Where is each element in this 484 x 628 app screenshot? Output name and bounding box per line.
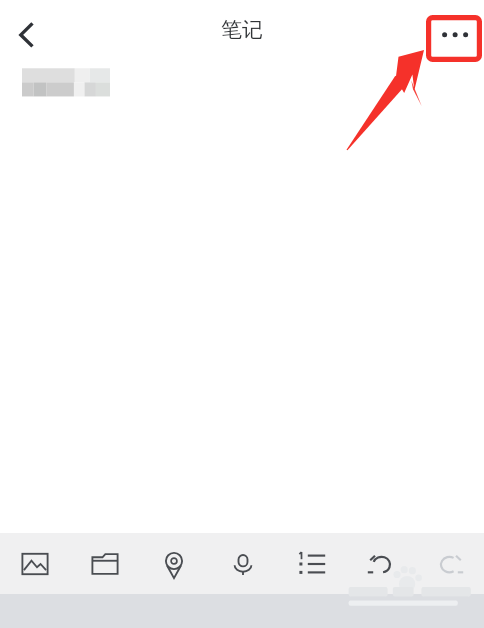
button[interactable]: More options	[426, 15, 482, 62]
button[interactable]: Undo	[346, 533, 415, 594]
button[interactable]: Folder	[70, 533, 139, 594]
button[interactable]: Redo	[415, 533, 484, 594]
staticText: 笔记	[221, 17, 263, 43]
button[interactable]: Back	[0, 8, 48, 56]
button[interactable]: Voice input	[208, 533, 277, 594]
button[interactable]: List	[277, 533, 346, 594]
button[interactable]: Location	[139, 533, 208, 594]
button[interactable]: Insert image	[0, 533, 70, 594]
